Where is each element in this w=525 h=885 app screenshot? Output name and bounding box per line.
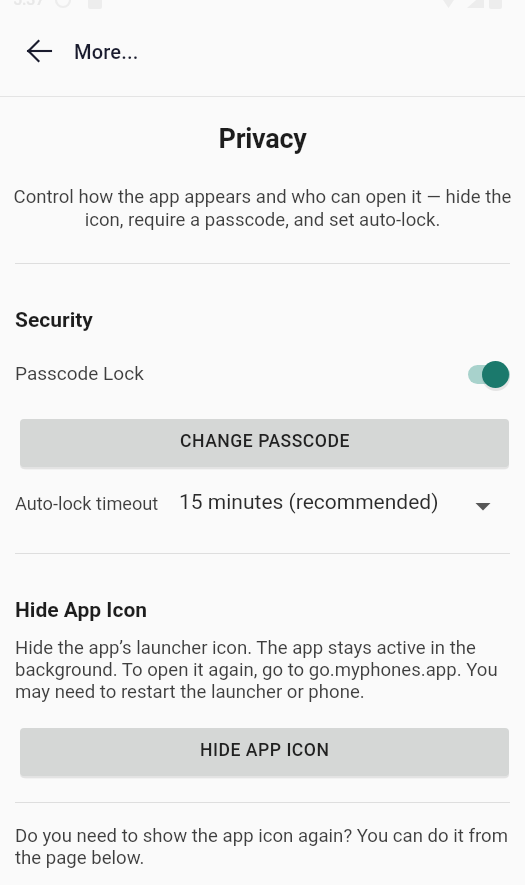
staticText: Auto-lock timeout	[15, 493, 159, 514]
staticText: Do you need to show the app icon again? …	[15, 825, 508, 869]
staticText: Passcode Lock	[15, 362, 144, 384]
staticText: Privacy	[0, 123, 525, 155]
staticText: More...	[74, 40, 139, 63]
staticText: Control how the app appears and who can …	[0, 186, 525, 230]
button[interactable]: Auto-lock timeout	[0, 487, 525, 527]
staticText: 5:37	[13, 0, 45, 9]
button[interactable]: Passcode Lock	[15, 355, 510, 395]
staticText: Hide App Icon	[15, 598, 148, 623]
staticText: HIDE APP ICON	[200, 740, 330, 761]
staticText: 15 minutes (recommended)	[179, 490, 439, 515]
button[interactable]: HIDE APP ICON	[20, 728, 509, 776]
staticText: CHANGE PASSCODE	[180, 431, 350, 452]
staticText: Security	[15, 308, 93, 333]
button[interactable]	[22, 37, 56, 65]
button[interactable]: CHANGE PASSCODE	[20, 419, 509, 467]
staticText: Hide the app’s launcher icon. The app st…	[15, 637, 498, 703]
